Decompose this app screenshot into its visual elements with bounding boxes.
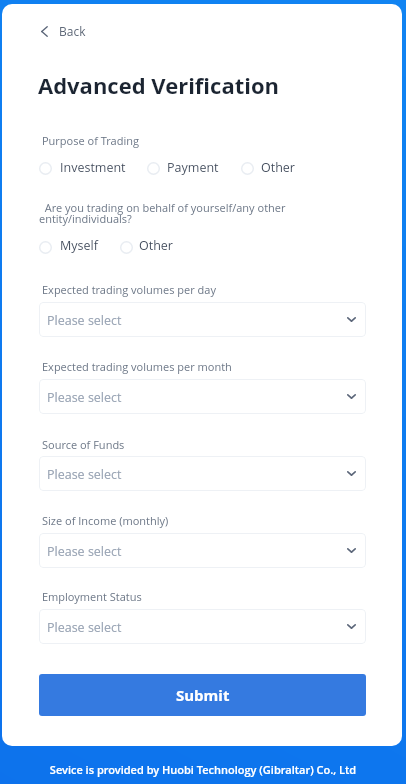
staticText: Payment (167, 159, 219, 176)
staticText: Are you trading on behalf of yourself/an… (39, 200, 286, 226)
button[interactable]: Back (36, 19, 86, 43)
staticText: Size of Income (monthly) (42, 513, 169, 528)
staticText: Submit (176, 685, 230, 705)
staticText: Expected trading volumes per day (42, 282, 216, 297)
button[interactable]: Myself (38, 236, 99, 258)
staticText: Please select (47, 466, 122, 483)
staticText: Back (59, 23, 86, 39)
staticText: Employment Status (42, 589, 142, 604)
staticText: Please select (47, 312, 122, 329)
staticText: Please select (47, 389, 122, 406)
button[interactable]: Payment (146, 157, 219, 179)
staticText: Sevice is provided by Huobi Technology (… (0, 762, 406, 777)
staticText: Please select (47, 543, 122, 560)
button[interactable]: Employment Status (39, 609, 366, 644)
staticText: Other (139, 237, 173, 254)
staticText: Other (261, 159, 295, 176)
button[interactable]: Submit (39, 674, 366, 716)
button[interactable]: Source of Funds (39, 456, 366, 491)
button[interactable]: Other (240, 157, 296, 179)
staticText: Source of Funds (42, 437, 125, 452)
staticText: Investment (60, 159, 126, 176)
button[interactable]: Expected trading volumes per day (39, 302, 366, 337)
staticText: Advanced Verification (38, 70, 280, 100)
staticText: Please select (47, 619, 122, 636)
staticText: Purpose of Trading (42, 133, 139, 148)
button[interactable]: Investment (38, 157, 126, 179)
button[interactable]: Other (119, 236, 174, 258)
staticText: Expected trading volumes per month (42, 359, 232, 374)
button[interactable]: Size of Income (monthly) (39, 533, 366, 568)
other: Back (41, 26, 48, 37)
staticText: Myself (60, 237, 98, 254)
button[interactable]: Expected trading volumes per month (39, 379, 366, 414)
